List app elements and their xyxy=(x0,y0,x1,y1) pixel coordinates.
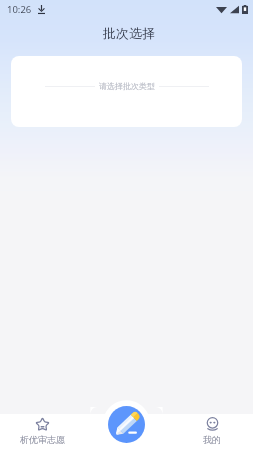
button[interactable]: 析优审志愿 xyxy=(20,417,65,445)
staticText: 析优审志愿 xyxy=(20,434,65,445)
staticText: 请选择批次类型 xyxy=(99,81,155,91)
staticText: 我的 xyxy=(203,434,221,445)
button[interactable]: 我的 xyxy=(203,417,221,445)
staticText: 批次选择 xyxy=(103,25,155,41)
button[interactable]: 新建 xyxy=(108,406,145,443)
staticText: 10:26 xyxy=(7,3,32,16)
button[interactable]: 请选择批次类型 xyxy=(11,56,242,127)
